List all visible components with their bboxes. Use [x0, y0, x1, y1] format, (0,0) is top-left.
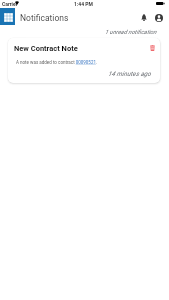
- staticText: 14 minutes ago: [108, 70, 151, 78]
- button[interactable]: Delete: [147, 42, 158, 53]
- button[interactable]: Account: [152, 11, 165, 24]
- button[interactable]: Notifications: [137, 11, 150, 24]
- button[interactable]: Apps: [0, 8, 15, 25]
- staticText: 1 unread notification: [105, 29, 157, 36]
- staticText: New Contract Note: [14, 44, 78, 53]
- staticText: 1:44 PM: [74, 1, 93, 7]
- button[interactable]: New Contract Note: [8, 38, 160, 83]
- staticText: Notifications: [20, 13, 69, 23]
- staticText: A note was added to contract 00090521.: [16, 60, 98, 65]
- staticText: Carrier: [2, 1, 18, 7]
